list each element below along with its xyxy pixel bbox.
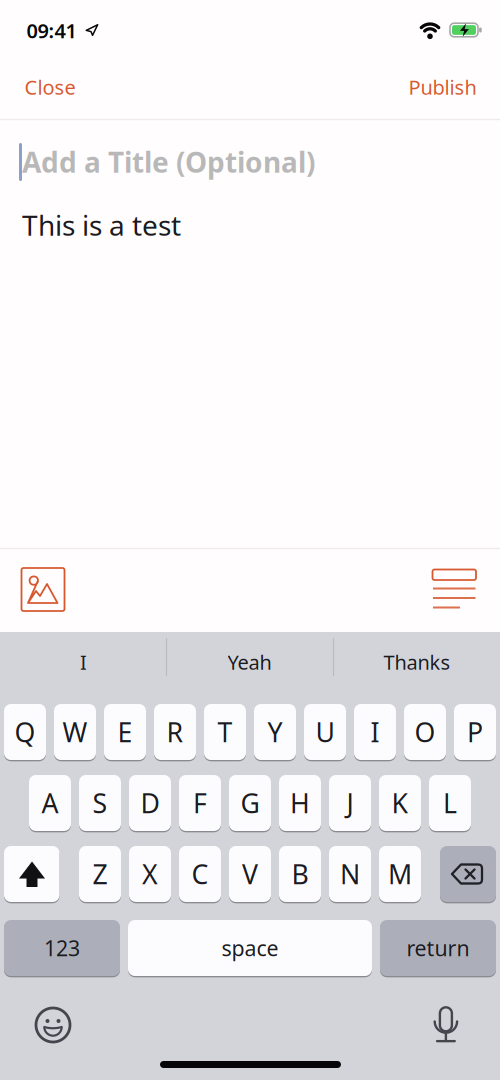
staticText: Y — [267, 714, 282, 750]
staticText: Close — [24, 74, 75, 100]
staticText: Yeah — [227, 649, 271, 675]
button[interactable]: J — [329, 775, 371, 831]
staticText: I — [80, 649, 87, 675]
staticText: return — [406, 934, 469, 962]
button[interactable]: Q — [4, 704, 46, 760]
staticText: P — [467, 714, 483, 750]
staticText: D — [140, 785, 159, 821]
staticText: W — [62, 714, 87, 750]
button[interactable]: E — [104, 704, 146, 760]
staticText: B — [291, 856, 308, 892]
button[interactable]: Dictate — [432, 1005, 459, 1043]
staticText: F — [193, 785, 207, 821]
button[interactable]: Publish — [408, 74, 476, 100]
button[interactable]: U — [304, 704, 346, 760]
button[interactable]: X — [129, 846, 171, 902]
button[interactable]: Add image — [21, 567, 65, 611]
button[interactable]: Y — [254, 704, 296, 760]
button[interactable]: Text formatting — [431, 567, 477, 609]
button[interactable]: N — [329, 846, 371, 902]
button[interactable]: H — [279, 775, 321, 831]
button[interactable]: return — [380, 920, 496, 976]
staticText: N — [340, 856, 360, 892]
staticText: G — [240, 785, 259, 821]
button[interactable]: Delete — [440, 846, 496, 902]
button[interactable]: L — [429, 775, 471, 831]
button[interactable]: Shift — [4, 846, 59, 902]
staticText: Publish — [408, 74, 476, 100]
button[interactable]: Yeah — [174, 640, 324, 684]
staticText: H — [290, 785, 310, 821]
staticText: K — [391, 785, 408, 821]
button[interactable]: B — [279, 846, 321, 902]
button[interactable]: P — [454, 704, 496, 760]
staticText: X — [142, 856, 158, 892]
staticText: Thanks — [383, 649, 450, 675]
button[interactable]: Z — [79, 846, 121, 902]
staticText: E — [117, 714, 132, 750]
button[interactable]: K — [379, 775, 421, 831]
staticText: O — [414, 714, 435, 750]
button[interactable]: space — [128, 920, 372, 976]
button[interactable]: M — [379, 846, 421, 902]
button[interactable]: V — [229, 846, 271, 902]
staticText: This is a test — [22, 206, 181, 244]
button[interactable]: I — [354, 704, 396, 760]
button[interactable]: T — [204, 704, 246, 760]
staticText: J — [346, 785, 353, 821]
button[interactable]: 123 — [4, 920, 120, 976]
staticText: T — [217, 714, 232, 750]
staticText: A — [41, 785, 58, 821]
button[interactable]: O — [404, 704, 446, 760]
staticText: L — [443, 785, 457, 821]
staticText: I — [370, 714, 379, 750]
staticText: 123 — [44, 934, 80, 962]
button[interactable]: S — [79, 775, 121, 831]
button[interactable]: G — [229, 775, 271, 831]
staticText: Q — [14, 714, 35, 750]
staticText: C — [191, 856, 208, 892]
button[interactable]: W — [54, 704, 96, 760]
button[interactable]: C — [179, 846, 221, 902]
staticText: M — [388, 856, 412, 892]
staticText: V — [242, 856, 258, 892]
staticText: S — [92, 785, 107, 821]
button[interactable]: I — [8, 640, 158, 684]
button[interactable]: D — [129, 775, 171, 831]
button[interactable]: A — [29, 775, 71, 831]
button[interactable]: Emoji — [36, 1008, 70, 1042]
button[interactable]: Thanks — [342, 640, 492, 684]
button[interactable]: F — [179, 775, 221, 831]
staticText: Add a Title (Optional) — [22, 143, 315, 181]
button[interactable]: Close — [24, 74, 75, 100]
staticText: Z — [92, 856, 107, 892]
staticText: U — [315, 714, 334, 750]
button[interactable]: R — [154, 704, 196, 760]
staticText: R — [166, 714, 183, 750]
staticText: space — [221, 934, 278, 962]
staticText: 09:41 — [26, 17, 76, 44]
